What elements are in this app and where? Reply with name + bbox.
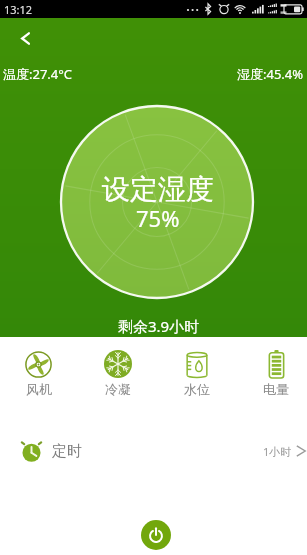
button[interactable]: 水位 <box>159 347 235 403</box>
staticText: 风机 <box>26 381 52 397</box>
button[interactable]: 电量 <box>238 347 307 403</box>
staticText: 定时 <box>52 442 82 461</box>
staticText: 电量 <box>263 381 289 397</box>
staticText: 1小时 <box>263 444 292 459</box>
button[interactable]: 风机 <box>0 347 76 403</box>
button[interactable]: Power <box>141 520 171 550</box>
staticText: 水位 <box>184 381 210 397</box>
staticText: 13:12 <box>4 2 33 17</box>
button[interactable]: 冷凝 <box>80 347 156 403</box>
button[interactable]: 定时 <box>0 419 307 483</box>
staticText: 剩余3.9小时 <box>118 316 200 336</box>
button[interactable]: Back <box>8 21 43 56</box>
staticText: 温度:27.4°C <box>3 65 73 83</box>
staticText: 湿度:45.4% <box>237 65 304 83</box>
staticText: 冷凝 <box>105 381 131 397</box>
staticText: 75% <box>136 203 180 233</box>
staticText: 设定湿度 <box>102 172 214 207</box>
